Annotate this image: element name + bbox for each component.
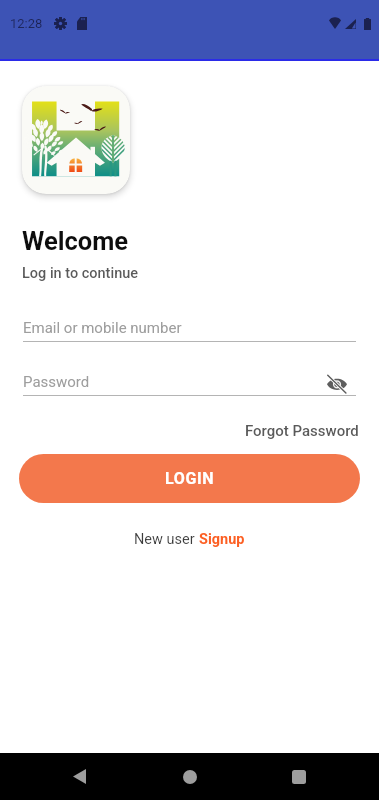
staticText: New user <box>134 531 199 548</box>
staticText: LOGIN <box>165 469 215 488</box>
button[interactable]: Signup <box>199 531 245 548</box>
button[interactable]: Show password <box>324 371 350 397</box>
staticText: Email or mobile number <box>23 319 182 337</box>
button[interactable]: Forgot Password <box>245 422 359 440</box>
staticText: Log in to continue <box>22 265 139 282</box>
button[interactable]: Recent apps <box>271 753 327 800</box>
staticText: Password <box>23 373 90 391</box>
button[interactable]: Back <box>51 753 107 800</box>
staticText: Welcome <box>22 226 128 256</box>
staticText: 12:28 <box>10 16 43 31</box>
button[interactable]: Home <box>162 753 218 800</box>
button[interactable]: LOGIN <box>19 454 360 503</box>
